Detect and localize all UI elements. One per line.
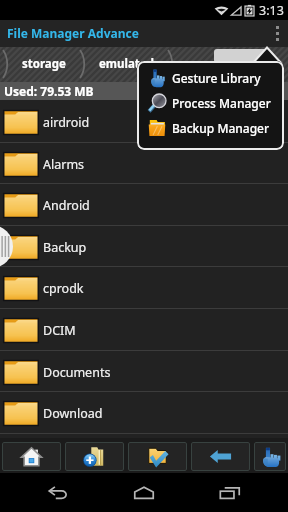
button[interactable]: DCIM xyxy=(0,309,288,351)
button[interactable]: Back xyxy=(30,473,86,512)
staticText: Documents xyxy=(43,364,111,381)
staticText: Movies xyxy=(43,447,85,464)
button[interactable]: Movies xyxy=(0,434,288,476)
button[interactable]: Backup xyxy=(0,226,288,268)
button[interactable]: Process Manager xyxy=(140,90,284,115)
button[interactable]: Download xyxy=(0,392,288,434)
staticText: File Manager Advance xyxy=(7,25,139,41)
button[interactable]: New folder xyxy=(65,442,124,471)
staticText: 3:13 xyxy=(259,2,284,19)
staticText: Used: 79.53 MB xyxy=(4,83,94,99)
button[interactable]: Back xyxy=(191,442,250,471)
button[interactable]: Home xyxy=(2,442,61,471)
staticText: Alarms xyxy=(43,156,85,173)
button[interactable]: Backup Manager xyxy=(140,115,284,140)
button[interactable]: Alarms xyxy=(0,143,288,185)
staticText: Gesture Library xyxy=(172,70,261,86)
button[interactable]: Gesture Library xyxy=(140,65,284,90)
button[interactable]: Home xyxy=(116,473,172,512)
button[interactable]: emulated xyxy=(86,46,167,81)
staticText: Download xyxy=(43,405,103,422)
button[interactable]: Android xyxy=(0,184,288,226)
button[interactable]: Recent apps xyxy=(202,473,258,512)
staticText: Backup xyxy=(43,239,87,256)
staticText: storage xyxy=(22,56,66,72)
button[interactable]: airdroid xyxy=(0,101,288,143)
button[interactable]: Gesture xyxy=(254,442,286,471)
button[interactable]: Select all xyxy=(128,442,187,471)
staticText: cprodk xyxy=(43,280,84,297)
button[interactable]: More options xyxy=(266,20,288,47)
staticText: airdroid xyxy=(43,114,90,131)
button[interactable]: cprodk xyxy=(0,267,288,309)
staticText: emulated xyxy=(99,56,154,72)
staticText: Process Manager xyxy=(172,95,271,111)
staticText: Backup Manager xyxy=(172,120,270,136)
other: Scroll handle xyxy=(0,225,13,268)
button[interactable]: Documents xyxy=(0,351,288,393)
button[interactable]: storage xyxy=(9,46,79,81)
staticText: DCIM xyxy=(43,322,76,339)
staticText: Android xyxy=(43,197,90,214)
